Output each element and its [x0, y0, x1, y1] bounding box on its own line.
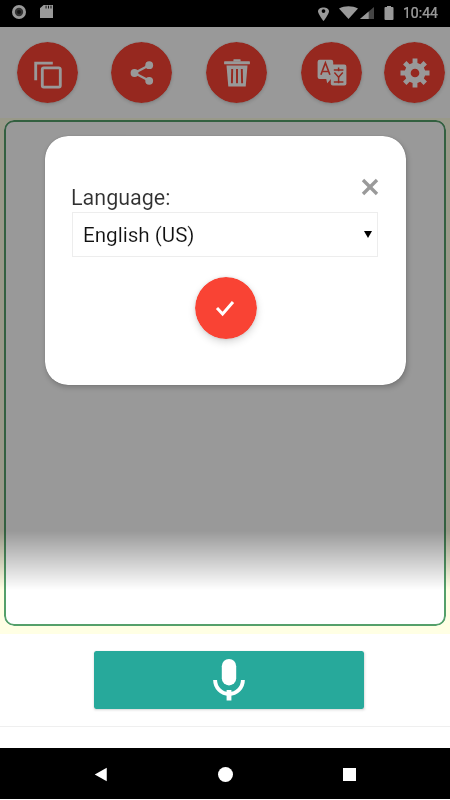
button[interactable]: Close — [353, 170, 386, 203]
staticText: 10:44 — [403, 5, 438, 21]
button[interactable]: Settings — [384, 42, 445, 103]
button[interactable]: Back — [78, 751, 124, 797]
button[interactable]: Language selector — [72, 212, 378, 257]
button[interactable]: Recent apps — [326, 751, 372, 797]
button[interactable]: Copy — [17, 42, 78, 103]
button[interactable]: Translate — [301, 42, 362, 103]
staticText: English (US) — [83, 223, 195, 247]
button[interactable]: Share — [111, 42, 172, 103]
button[interactable]: Delete — [206, 42, 267, 103]
button[interactable]: Confirm — [195, 277, 257, 339]
button[interactable]: Record voice — [94, 651, 364, 709]
button[interactable]: Home — [202, 751, 248, 797]
staticText: Language: — [71, 185, 171, 210]
